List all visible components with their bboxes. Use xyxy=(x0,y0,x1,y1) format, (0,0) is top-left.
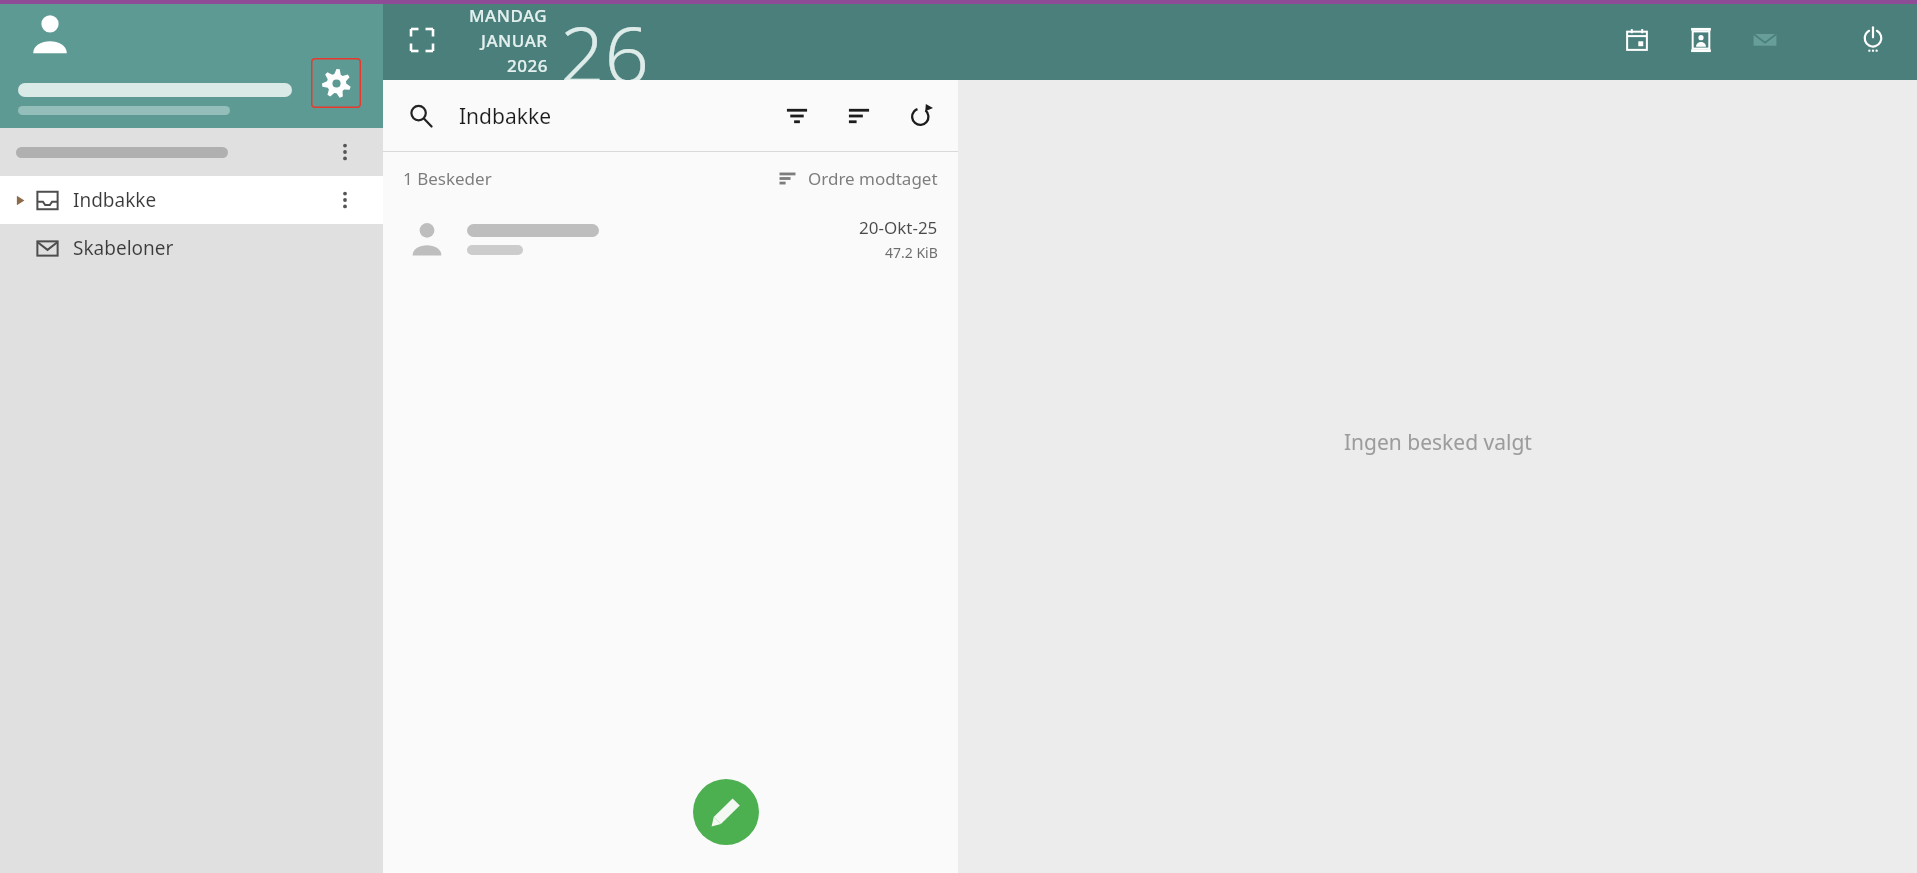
staticText: 20-Okt-25 xyxy=(859,216,938,239)
staticText: 26 xyxy=(560,0,650,80)
button[interactable]: Folder options xyxy=(327,182,363,218)
button[interactable]: Toggle fullscreen xyxy=(401,19,443,61)
button[interactable]: Indbakke xyxy=(0,176,383,224)
staticText: Ingen besked valgt xyxy=(1344,428,1532,457)
button[interactable]: Search xyxy=(401,96,441,136)
staticText: MANDAG xyxy=(469,4,548,27)
button[interactable]: Compose message xyxy=(693,779,759,845)
button[interactable]: Sort xyxy=(838,95,880,137)
button[interactable]: Account avatar xyxy=(24,8,76,60)
staticText: 47.2 KiB xyxy=(885,243,938,262)
button[interactable]: Settings xyxy=(311,58,361,108)
button[interactable]: Contacts xyxy=(1677,16,1725,64)
button[interactable]: Account options xyxy=(327,134,363,170)
staticText: Skabeloner xyxy=(73,235,174,261)
button[interactable]: Account options xyxy=(0,128,383,176)
button[interactable]: 20-Okt-25 xyxy=(383,204,958,274)
button[interactable]: Calendar xyxy=(1613,16,1661,64)
staticText: JANUAR xyxy=(481,29,548,52)
staticText: 2026 xyxy=(507,54,548,77)
button[interactable]: Refresh xyxy=(900,95,942,137)
staticText: Ordre modtaget xyxy=(808,167,938,190)
staticText: Indbakke xyxy=(73,187,157,213)
staticText: 1 Beskeder xyxy=(403,167,492,190)
button[interactable]: Filter xyxy=(776,95,818,137)
button[interactable]: Power xyxy=(1849,16,1897,64)
button[interactable]: Ordre modtaget xyxy=(774,161,942,196)
button[interactable]: Skabeloner xyxy=(0,224,383,272)
staticText: Indbakke xyxy=(459,102,551,131)
button[interactable]: Mail xyxy=(1741,16,1789,64)
